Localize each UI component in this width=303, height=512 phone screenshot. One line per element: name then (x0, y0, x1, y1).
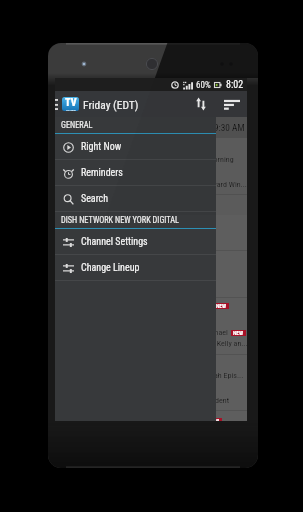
staticText: GENERAL (61, 120, 93, 130)
staticText: Oprah Epis... (203, 371, 244, 380)
button[interactable]: Channel Settings (55, 229, 216, 255)
staticText: NEW (233, 330, 244, 336)
staticText: 8:02 (226, 79, 244, 91)
staticText: Your Award Win... (191, 180, 247, 189)
button[interactable]: Filter (221, 93, 243, 115)
button[interactable]: Search (55, 186, 216, 212)
staticText: NEW (209, 418, 220, 421)
staticText: Good Morning (189, 155, 234, 164)
staticText: Search (81, 193, 109, 205)
button[interactable]: Sort (190, 93, 212, 115)
staticText: TV (65, 97, 77, 109)
staticText: Right Now (81, 141, 122, 153)
staticText: President (199, 396, 229, 405)
button[interactable]: Change Lineup (55, 255, 216, 281)
staticText: Channel Settings (81, 236, 148, 248)
staticText: 60% (196, 80, 211, 91)
staticText: Reminders (81, 167, 123, 179)
staticText: Michael (203, 328, 228, 337)
staticText: NEW (216, 303, 227, 309)
staticText: Friday (EDT) (83, 98, 139, 111)
button[interactable]: Right Now (55, 134, 216, 160)
staticText: Change Lineup (81, 262, 140, 274)
button[interactable]: TV Guide (62, 97, 79, 111)
staticText: 9:30 AM (214, 122, 245, 133)
staticText: DISH NETWORK NEW YORK DIGITAL (61, 215, 179, 225)
staticText: GUIDE (66, 109, 76, 111)
other: Open navigation (55, 99, 58, 110)
staticText: Live with Kelly an... (187, 339, 247, 348)
button[interactable]: Reminders (55, 160, 216, 186)
